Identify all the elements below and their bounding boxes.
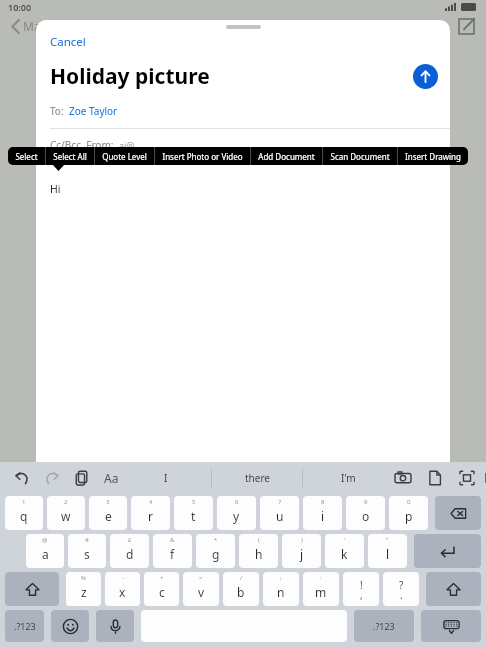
button[interactable]: I'm	[303, 462, 393, 494]
button[interactable]: Compose	[456, 16, 476, 36]
button[interactable]: @	[26, 534, 64, 568]
button[interactable]: 2	[47, 496, 85, 530]
button[interactable]: Hide Keyboard	[421, 610, 481, 642]
staticText: t	[191, 508, 196, 524]
button[interactable]: Scan Document	[323, 147, 397, 165]
button[interactable]: Cancel	[46, 32, 90, 52]
staticText: %	[81, 574, 86, 582]
staticText: o	[362, 508, 370, 524]
staticText: aj@	[119, 139, 135, 151]
button[interactable]: Document	[425, 468, 445, 488]
staticText: To:	[50, 104, 64, 118]
button[interactable]: I	[121, 462, 211, 494]
button[interactable]: Redo	[42, 468, 62, 488]
button[interactable]: ;	[263, 572, 299, 606]
staticText: I'm	[341, 471, 356, 485]
button[interactable]: +	[144, 572, 179, 606]
staticText: =	[199, 574, 203, 582]
staticText: -	[122, 574, 124, 582]
staticText: v	[198, 584, 205, 600]
staticText: p	[405, 508, 413, 524]
staticText: /	[240, 574, 243, 582]
staticText: :	[320, 574, 322, 582]
staticText: Zoe Taylor	[69, 104, 118, 118]
button[interactable]: Emoji	[51, 610, 89, 642]
button[interactable]: .?123	[5, 610, 44, 642]
button[interactable]: Scan	[457, 468, 477, 488]
button[interactable]: Quote Level	[95, 147, 154, 165]
button[interactable]: *	[196, 534, 235, 568]
button[interactable]: there	[212, 462, 302, 494]
staticText: a	[42, 546, 49, 562]
button[interactable]: /	[223, 572, 259, 606]
button[interactable]: Insert Photo or Video	[155, 147, 250, 165]
staticText: q	[20, 508, 28, 524]
staticText: (	[258, 536, 260, 544]
button[interactable]: Paste	[72, 468, 92, 488]
staticText: 6	[235, 498, 239, 506]
button[interactable]: £	[110, 534, 149, 568]
button[interactable]: )	[282, 534, 321, 568]
staticText: 9	[364, 498, 368, 506]
button[interactable]: %	[66, 572, 101, 606]
button[interactable]: Backspace	[435, 496, 481, 530]
staticText: y	[233, 508, 240, 524]
button[interactable]: Add Document	[251, 147, 322, 165]
button[interactable]: Dictate	[96, 610, 134, 642]
staticText: n	[277, 584, 285, 600]
button[interactable]: Shift	[5, 572, 59, 606]
button[interactable]: !	[343, 572, 379, 606]
staticText: z	[81, 584, 87, 600]
staticText: ,	[360, 588, 363, 602]
staticText: '	[344, 536, 346, 544]
staticText: 10:00	[8, 1, 32, 13]
button[interactable]: 6	[217, 496, 256, 530]
button[interactable]: 7	[260, 496, 299, 530]
staticText: 1	[22, 498, 26, 506]
button[interactable]: #	[68, 534, 106, 568]
button[interactable]: 4	[131, 496, 170, 530]
button[interactable]: 8	[303, 496, 342, 530]
button[interactable]: :	[303, 572, 339, 606]
button[interactable]: -	[105, 572, 140, 606]
button[interactable]: 3	[89, 496, 127, 530]
button[interactable]: 5	[174, 496, 213, 530]
button[interactable]: 9	[346, 496, 385, 530]
staticText: +	[160, 574, 164, 582]
button[interactable]: ?	[383, 572, 419, 606]
button[interactable]: Select	[8, 147, 45, 165]
button[interactable]: Send	[413, 64, 438, 89]
staticText: h	[255, 546, 263, 562]
button[interactable]: Undo	[12, 468, 32, 488]
button[interactable]: .?123	[354, 610, 414, 642]
button[interactable]: 0	[389, 496, 428, 530]
button[interactable]: Camera	[393, 468, 413, 488]
staticText: Quote Level	[102, 151, 147, 162]
button[interactable]: Return	[414, 534, 481, 568]
staticText: Mail	[23, 18, 47, 34]
button[interactable]: Zoe Taylor	[69, 104, 118, 118]
staticText: 7	[278, 498, 282, 506]
staticText: j	[300, 546, 304, 562]
button[interactable]: Insert Drawing	[398, 147, 468, 165]
staticText: )	[301, 536, 303, 544]
button[interactable]: Select All	[46, 147, 94, 165]
staticText: .?123	[373, 620, 395, 632]
button[interactable]: 1	[5, 496, 43, 530]
staticText: e	[105, 508, 112, 524]
button[interactable]: Aa	[102, 470, 121, 486]
staticText: i	[321, 508, 325, 524]
staticText: "	[386, 536, 389, 544]
button[interactable]: "	[368, 534, 407, 568]
staticText: #	[85, 536, 89, 544]
button[interactable]: =	[183, 572, 219, 606]
button[interactable]: '	[325, 534, 364, 568]
staticText: ?	[399, 578, 404, 592]
staticText: Holiday picture	[50, 62, 210, 91]
staticText: Aa	[104, 470, 119, 486]
button[interactable]: (	[239, 534, 278, 568]
button[interactable]: &	[153, 534, 192, 568]
button[interactable]: Shift	[426, 572, 481, 606]
staticText: there	[245, 471, 270, 485]
